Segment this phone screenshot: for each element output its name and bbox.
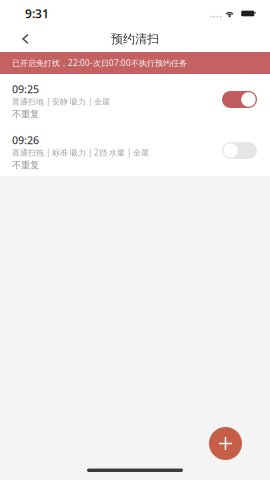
staticText: 不重复 <box>12 108 39 120</box>
button[interactable]: Add schedule <box>209 427 242 460</box>
staticText: 普通扫地 | 安静 吸力 | 全屋 <box>12 96 110 107</box>
button[interactable]: 09:25 <box>0 74 270 125</box>
staticText: 普通扫拖 | 标准 吸力 | 2挡 水量 | 全屋 <box>12 147 149 158</box>
staticText: 预约清扫 <box>111 32 159 46</box>
staticText: 09:25 <box>12 82 39 96</box>
staticText: 已开启免打扰，22:00-次日07:00不执行预约任务 <box>12 58 187 68</box>
staticText: 9:31 <box>25 5 49 21</box>
staticText: 不重复 <box>12 159 39 171</box>
button[interactable]: 09:26 <box>0 125 270 176</box>
staticText: 09:26 <box>12 133 39 147</box>
button[interactable]: Back <box>0 27 43 51</box>
